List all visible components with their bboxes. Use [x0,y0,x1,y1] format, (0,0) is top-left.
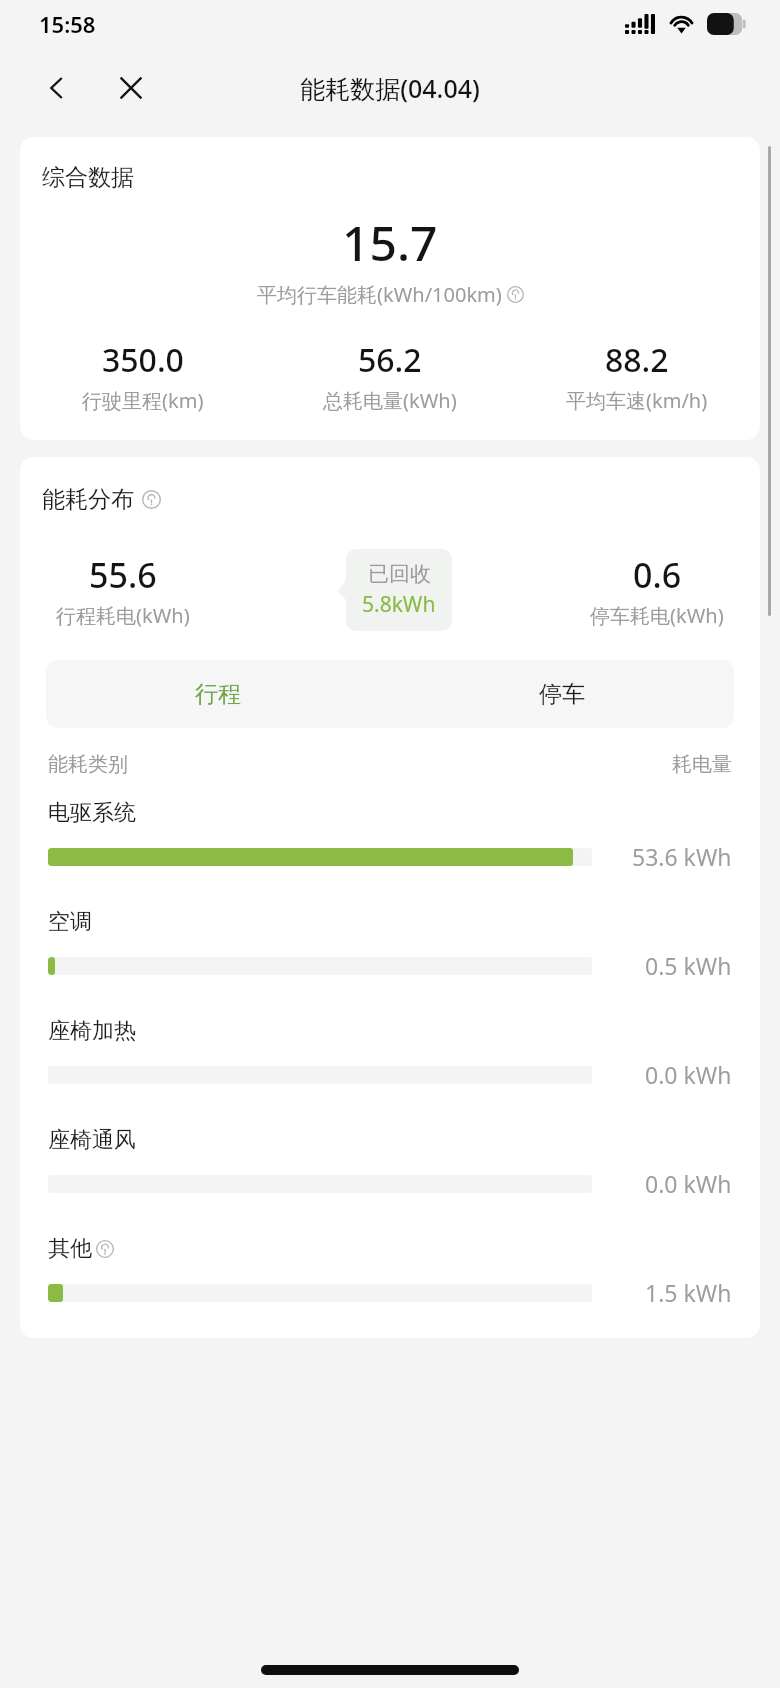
staticText: 0.6 [633,552,682,598]
button[interactable]: 行程 [46,660,390,728]
staticText: 空调 [48,908,92,936]
staticText: 15.7 [342,210,438,275]
staticText: 停车耗电(kWh) [590,602,724,629]
staticText: 其他 [48,1235,92,1263]
staticText: 行程耗电(kWh) [56,602,190,629]
staticText: 5.8kWh [362,590,436,619]
staticText: 0.0 kWh [645,1059,732,1090]
button[interactable]: Close [104,61,158,115]
staticText: 平均车速(km/h) [566,387,708,414]
staticText: 行程 [195,680,241,709]
staticText: 55.6 [89,552,157,598]
staticText: 总耗电量(kWh) [323,387,457,414]
staticText: 1.5 kWh [645,1277,732,1308]
staticText: 15:58 [39,9,96,39]
staticText: 耗电量 [672,752,732,777]
staticText: 已回收 [368,561,431,587]
staticText: 平均行车能耗(kWh/100km) [257,281,502,308]
staticText: 能耗分布 [42,485,134,514]
staticText: 0.0 kWh [645,1168,732,1199]
staticText: 停车 [539,680,585,709]
button[interactable]: Back [30,61,84,115]
staticText: 能耗数据(04.04) [300,71,480,105]
staticText: 56.2 [358,338,422,382]
button[interactable]: 停车 [390,660,734,728]
staticText: 座椅加热 [48,1017,136,1045]
staticText: 能耗类别 [48,752,128,777]
staticText: 座椅通风 [48,1126,136,1154]
staticText: 88.2 [605,338,669,382]
staticText: 350.0 [102,338,184,382]
staticText: 0.5 kWh [645,950,732,981]
staticText: 53.6 kWh [632,841,732,872]
staticText: 综合数据 [42,163,134,192]
staticText: 电驱系统 [48,799,136,827]
staticText: 行驶里程(km) [82,387,204,414]
